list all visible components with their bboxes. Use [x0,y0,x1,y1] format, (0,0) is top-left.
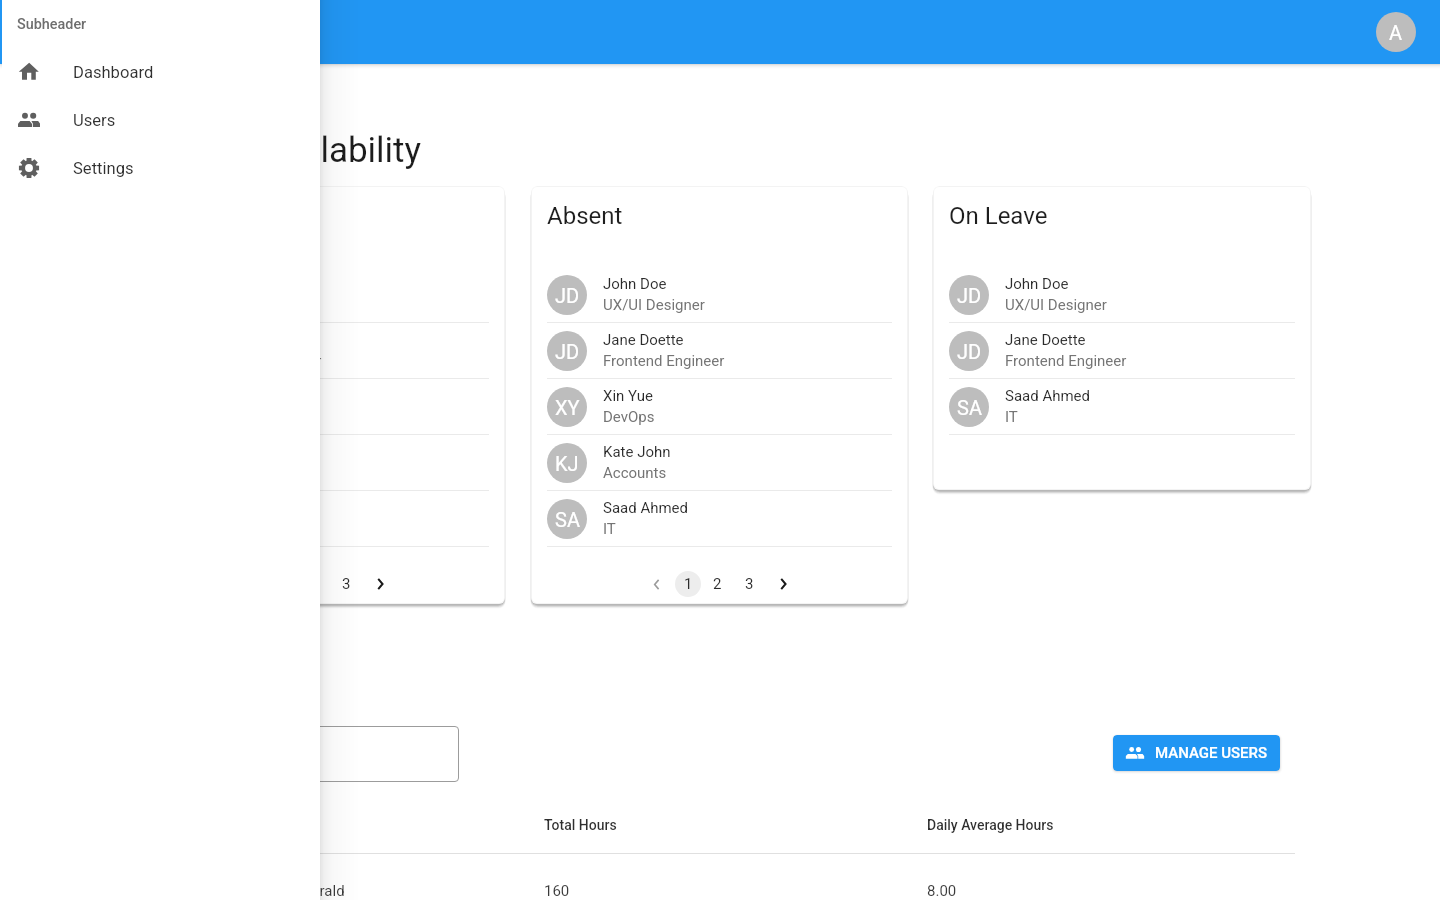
button[interactable]: XY [144,379,489,434]
button[interactable]: Next page [362,568,394,600]
staticText: Xin Yue [603,387,654,405]
button[interactable]: 3 [330,568,362,600]
staticText: Settings [73,159,134,178]
staticText: Frontend Engineer [603,352,725,370]
staticText: UX/UI Designer [1005,296,1107,314]
button[interactable]: SA [547,491,892,546]
button[interactable]: MANAGE USERS [1113,735,1280,771]
button[interactable]: JD [144,323,489,378]
staticText: JD [957,284,982,307]
button[interactable]: SA [949,379,1295,434]
button[interactable]: JD [949,267,1295,322]
staticText: Daily Average Hours [927,817,1054,833]
button[interactable]: 2 [298,568,330,600]
button[interactable]: Previous page [643,568,675,600]
staticText: Saad Ahmed [603,499,689,517]
staticText: Dashboard [73,63,154,82]
button[interactable]: JD [144,267,489,322]
staticText: 1 [684,575,693,593]
button[interactable]: 3 [733,568,765,600]
staticText: Users [73,111,116,130]
staticText: 3 [745,575,754,593]
staticText: Subheader [17,16,87,33]
button[interactable]: JD [547,323,892,378]
staticText: Frontend Engineer [1005,352,1127,370]
staticText: JD [555,284,580,307]
staticText: DevOps [603,408,655,426]
button[interactable]: Users [2,96,320,144]
staticText: SA [555,508,580,531]
staticText: Jane Doette [1005,331,1086,349]
staticText: John Doe [603,275,667,293]
staticText: IT [1005,408,1018,426]
staticText: Saad Ahmed [1005,387,1091,405]
staticText: 8.00 [927,882,957,900]
staticText: SA [957,396,982,419]
staticText: On Leave [949,202,1048,230]
button[interactable]: 1 [675,571,701,597]
staticText: JD [957,340,982,363]
staticText: Accounts [603,464,667,482]
button[interactable]: Dashboard [2,48,320,96]
staticText: Team Availability [158,130,422,171]
staticText: JD [555,340,580,363]
staticText: IT [603,520,616,538]
button[interactable]: JD [547,267,892,322]
staticText: MANAGE USERS [1155,744,1268,762]
staticText: Frontend Engineer [200,352,322,370]
button[interactable]: Account [1376,12,1416,52]
button[interactable]: KJ [547,435,892,490]
staticText: 2 [713,575,722,593]
staticText: Fitzgerald [279,882,345,900]
button[interactable]: XY [547,379,892,434]
staticText: Absent [547,202,623,230]
button[interactable] [296,726,459,782]
button[interactable]: KJ [144,435,489,490]
button[interactable]: Next page [765,568,797,600]
button[interactable]: 2 [701,568,733,600]
staticText: XY [555,396,580,419]
staticText: UX/UI Designer [603,296,705,314]
staticText: 3 [342,575,351,593]
staticText: 160 [544,882,570,900]
staticText: Kate John [603,443,671,461]
button[interactable]: SA [144,491,489,546]
button[interactable]: Settings [2,144,320,192]
staticText: Jane Doette [603,331,684,349]
staticText: John Doe [1005,275,1069,293]
button[interactable]: JD [949,323,1295,378]
staticText: KJ [555,452,579,475]
staticText: A [1389,21,1403,44]
staticText: Total Hours [544,817,617,833]
